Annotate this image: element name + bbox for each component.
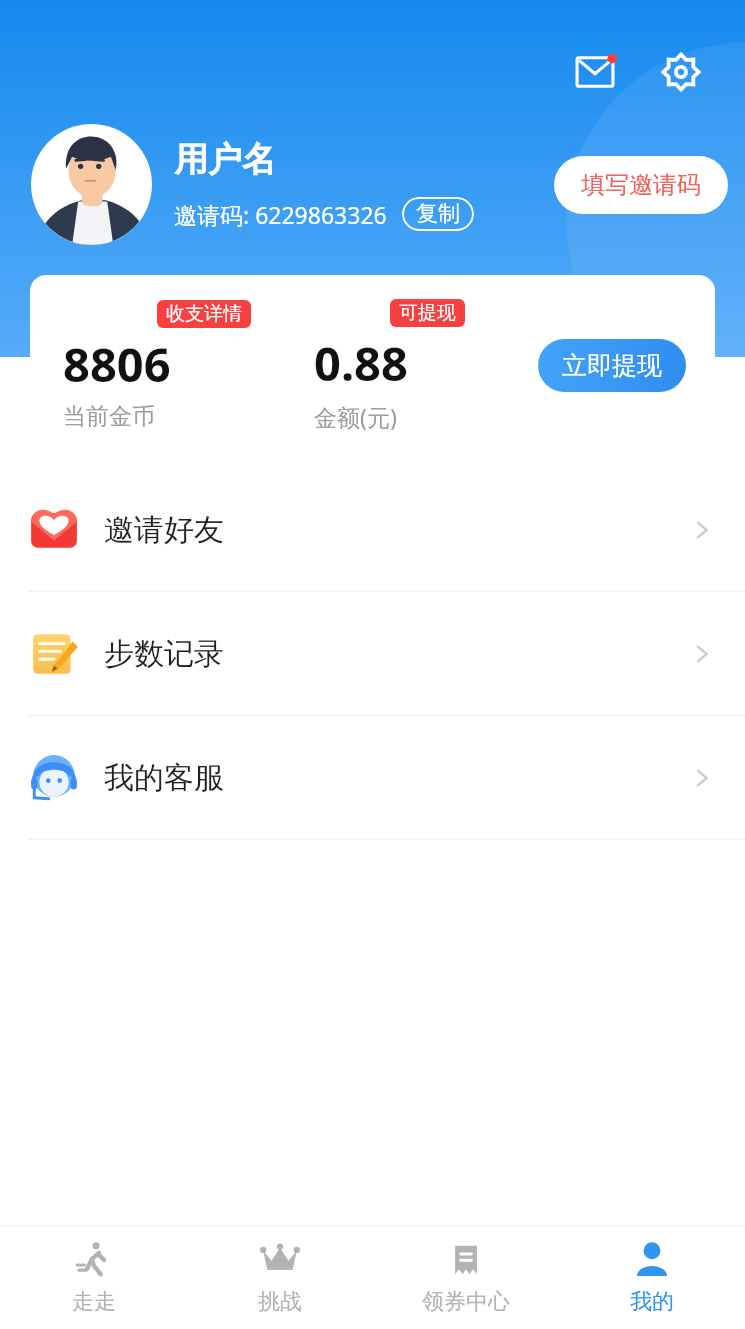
staticText: 复制 [416,200,460,228]
button[interactable]: 步数记录 [0,592,745,715]
button[interactable]: 立即提现 [538,339,686,392]
staticText: 立即提现 [562,350,662,381]
button[interactable]: 我的客服 [0,716,745,839]
staticText: 0.88 [314,331,408,395]
staticText: 走走 [72,1288,116,1316]
staticText: 邀请好友 [104,511,224,549]
staticText: 邀请码: 6229863326 [174,199,387,230]
staticText: 步数记录 [104,635,224,673]
staticText: 8806 [63,332,171,396]
staticText: 挑战 [258,1288,302,1316]
button[interactable]: 可提现 [390,299,465,327]
staticText: 我的 [630,1288,674,1316]
staticText: 可提现 [399,301,456,325]
button[interactable]: 我的 [559,1225,745,1329]
staticText: 我的客服 [104,759,224,797]
button[interactable]: 复制 [402,197,474,231]
button[interactable]: 领券中心 [373,1225,559,1329]
staticText: 当前金币 [63,402,155,431]
staticText: 用户名 [174,138,276,181]
button[interactable]: 挑战 [187,1225,373,1329]
button[interactable]: 收支详情 [157,300,251,328]
button[interactable]: 走走 [0,1225,187,1329]
staticText: 金额(元) [314,401,397,432]
button[interactable]: Settings [653,44,709,100]
button[interactable]: 邀请好友 [0,468,745,591]
staticText: 领券中心 [422,1288,510,1316]
button[interactable]: Messages [567,44,623,100]
staticText: 收支详情 [166,302,242,326]
button[interactable]: 填写邀请码 [554,156,728,214]
staticText: 填写邀请码 [581,170,701,200]
